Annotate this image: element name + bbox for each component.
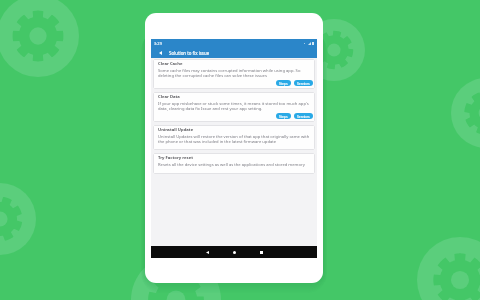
staticText: Clear Data [158, 94, 180, 100]
button[interactable]: Back [194, 246, 221, 258]
button[interactable]: Steps [276, 80, 291, 86]
staticText: Solution to fix issue [169, 50, 210, 56]
staticText: Services [297, 114, 310, 118]
staticText: Steps [279, 81, 288, 85]
staticText: Services [297, 81, 310, 85]
button[interactable]: Back [154, 47, 166, 58]
staticText: Clear Cache [158, 61, 183, 67]
button[interactable]: Try Factory reset [153, 153, 315, 174]
button[interactable]: Steps [276, 113, 291, 119]
button[interactable]: Recent apps [248, 246, 275, 258]
staticText: Uninstall Updates will restore the versi… [158, 134, 311, 144]
staticText: 3:29 [154, 41, 162, 46]
staticText: Resets all the device settings as well a… [158, 162, 305, 168]
staticText: Uninstall Update [158, 127, 194, 133]
button[interactable]: Uninstall Update [153, 125, 315, 150]
button[interactable]: Services [294, 80, 313, 86]
button[interactable]: Services [294, 113, 313, 119]
staticText: Some cache files may contains corrupted … [158, 68, 311, 78]
button[interactable]: Home [221, 246, 248, 258]
staticText: Try Factory reset [158, 155, 194, 161]
button[interactable]: Clear Cache [153, 59, 315, 89]
staticText: If your app misbehave or stuck some time… [158, 101, 311, 111]
staticText: Steps [279, 114, 288, 118]
button[interactable]: Clear Data [153, 92, 315, 122]
